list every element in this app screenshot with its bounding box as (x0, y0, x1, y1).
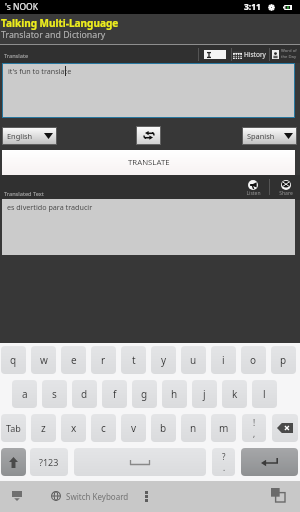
staticText: u (190, 353, 197, 367)
button[interactable]: ? (212, 448, 235, 476)
button[interactable]: q (1, 346, 26, 374)
other: Space (130, 460, 150, 465)
button[interactable]: n (181, 414, 206, 442)
staticText: d (81, 387, 88, 401)
staticText: Translator and Dictionary (1, 29, 106, 41)
staticText: Translated Text (4, 190, 44, 198)
staticText: a (22, 387, 28, 401)
button[interactable]: Keyboard input (204, 50, 226, 59)
button[interactable]: e (61, 346, 86, 374)
button[interactable]: v (121, 414, 146, 442)
button[interactable]: Space (74, 448, 206, 476)
button[interactable]: r (91, 346, 116, 374)
staticText: z (41, 421, 46, 435)
button[interactable]: History (233, 49, 266, 59)
staticText: TRANSLATE (128, 157, 170, 168)
staticText: v (131, 421, 137, 435)
button[interactable]: it's fun to translate (3, 64, 294, 117)
staticText: y (161, 353, 167, 367)
button[interactable]: Shift (1, 448, 26, 476)
button[interactable]: English (2, 127, 57, 145)
button[interactable]: f (102, 380, 127, 408)
button[interactable]: Word of (272, 48, 297, 60)
staticText: j (203, 387, 206, 401)
staticText: p (280, 353, 287, 367)
staticText: 's NOOK (5, 1, 38, 13)
button[interactable]: Tab (1, 414, 26, 442)
button[interactable]: t (121, 346, 146, 374)
staticText: the Day (281, 54, 297, 60)
staticText: b (160, 421, 167, 435)
staticText: Spanish (247, 131, 275, 141)
staticText: Translate (4, 52, 29, 60)
button[interactable]: o (241, 346, 266, 374)
other: Settings (268, 4, 275, 11)
button[interactable]: i (211, 346, 236, 374)
staticText: t (132, 353, 136, 367)
staticText: n (190, 421, 197, 435)
button[interactable]: x (61, 414, 86, 442)
button[interactable]: Swap languages (136, 126, 161, 145)
staticText: ?123 (39, 456, 59, 468)
staticText: , (253, 428, 256, 439)
other: Backspace (277, 423, 293, 433)
staticText: English (7, 131, 33, 141)
staticText: ? (222, 451, 226, 462)
staticText: x (71, 421, 77, 435)
button[interactable]: y (151, 346, 176, 374)
button[interactable]: es divertido para traducir (2, 199, 295, 255)
staticText: h (171, 387, 178, 401)
button[interactable]: z (31, 414, 56, 442)
other: Shift (9, 457, 18, 468)
button[interactable]: ! (242, 414, 266, 442)
staticText: . (223, 462, 226, 473)
staticText: Switch Keyboard (66, 491, 129, 502)
staticText: Listen (246, 190, 261, 197)
button[interactable]: Recent apps (269, 486, 287, 504)
button[interactable]: Backspace (272, 414, 298, 442)
staticText: Tab (6, 422, 21, 434)
button[interactable]: j (192, 380, 217, 408)
button[interactable]: ?123 (30, 448, 68, 476)
staticText: History (244, 50, 266, 59)
button[interactable]: Switch Keyboard (51, 489, 129, 503)
button[interactable]: u (181, 346, 206, 374)
staticText: w (40, 353, 48, 367)
button[interactable]: m (211, 414, 236, 442)
button[interactable]: Hide keyboard (9, 488, 25, 504)
button[interactable]: p (271, 346, 296, 374)
button[interactable]: k (222, 380, 247, 408)
button[interactable]: Spanish (242, 127, 297, 145)
button[interactable]: Share (275, 180, 297, 197)
staticText: es divertido para traducir (7, 202, 93, 212)
staticText: ! (253, 417, 256, 428)
other: Enter (261, 457, 278, 467)
button[interactable]: w (31, 346, 56, 374)
staticText: s (52, 387, 57, 401)
button[interactable]: a (12, 380, 37, 408)
staticText: q (10, 353, 17, 367)
staticText: f (113, 387, 117, 401)
staticText: l (263, 387, 266, 401)
button[interactable]: c (91, 414, 116, 442)
staticText: c (101, 421, 106, 435)
button[interactable]: TRANSLATE (2, 150, 295, 176)
staticText: o (250, 353, 257, 367)
staticText: Share (279, 190, 293, 197)
staticText: it's fun to translate (8, 66, 72, 76)
staticText: 3:11 (244, 1, 261, 13)
button[interactable]: l (252, 380, 277, 408)
button[interactable]: Listen (242, 180, 264, 197)
staticText: Word of (281, 48, 297, 54)
button[interactable]: d (72, 380, 97, 408)
staticText: i (222, 353, 225, 367)
button[interactable]: h (162, 380, 187, 408)
staticText: Talking Multi-Language (1, 16, 119, 30)
staticText: k (232, 387, 238, 401)
button[interactable]: Enter (241, 448, 298, 476)
button[interactable]: b (151, 414, 176, 442)
button[interactable]: g (132, 380, 157, 408)
button[interactable]: More options (138, 488, 154, 504)
staticText: r (101, 353, 106, 367)
button[interactable]: s (42, 380, 67, 408)
